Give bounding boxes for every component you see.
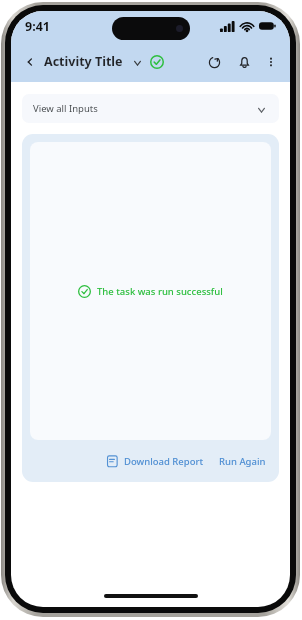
staticText: The task was run successful bbox=[97, 285, 223, 298]
button[interactable]: Refresh bbox=[202, 50, 226, 74]
button[interactable]: Download Report bbox=[102, 450, 207, 472]
staticText: Activity Title bbox=[44, 53, 123, 70]
button[interactable]: Back bbox=[19, 51, 41, 73]
button[interactable]: Run Again bbox=[216, 451, 269, 472]
staticText: 9:41 bbox=[25, 18, 50, 35]
staticText: Run Again bbox=[219, 455, 266, 468]
button[interactable]: Expand title menu bbox=[129, 54, 145, 70]
button[interactable]: Notifications bbox=[232, 50, 256, 74]
staticText: View all Inputs bbox=[33, 102, 98, 115]
staticText: Download Report bbox=[124, 455, 204, 468]
button[interactable]: More options bbox=[260, 51, 282, 73]
button[interactable]: View all Inputs bbox=[22, 94, 279, 123]
